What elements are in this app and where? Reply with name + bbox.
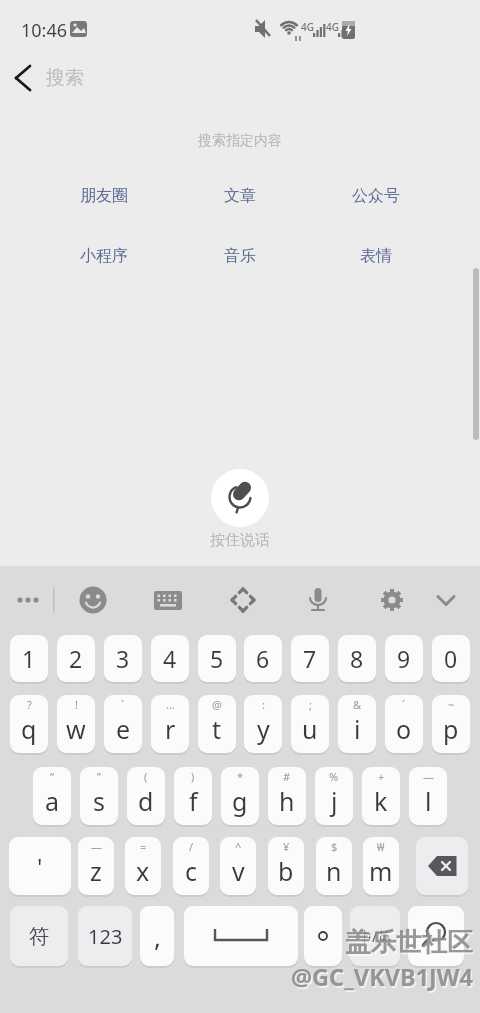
staticText: 朋友圈	[80, 186, 128, 206]
staticText: 0	[444, 643, 458, 674]
staticText: /	[189, 839, 194, 854]
staticText: e	[116, 712, 131, 746]
button[interactable]: 0	[432, 635, 470, 682]
button[interactable]	[4, 62, 44, 94]
button[interactable]	[146, 578, 190, 622]
staticText: 中/英	[358, 927, 392, 946]
staticText: 7	[303, 643, 317, 674]
button[interactable]: 4	[151, 635, 189, 682]
button[interactable]: (	[127, 767, 165, 825]
button[interactable]	[221, 578, 265, 622]
staticText: 搜索指定内容	[198, 132, 282, 150]
staticText: ”	[97, 769, 101, 784]
button[interactable]: '	[9, 837, 71, 895]
button[interactable]: ^	[220, 837, 256, 895]
button[interactable]: ₩	[363, 837, 399, 895]
staticText: 1	[22, 643, 36, 674]
button[interactable]: @	[198, 695, 236, 753]
staticText: 音乐	[224, 246, 256, 266]
staticText: 2	[69, 643, 83, 674]
button[interactable]: %	[315, 767, 353, 825]
staticText: 表情	[360, 246, 392, 266]
staticText: t	[212, 712, 222, 746]
staticText: #	[283, 769, 291, 784]
button[interactable]: 公众号	[266, 178, 480, 213]
button[interactable]: $	[316, 837, 352, 895]
button[interactable]	[416, 837, 468, 895]
button[interactable]	[370, 578, 414, 622]
staticText: 4	[163, 643, 177, 674]
button[interactable]: !	[57, 695, 95, 753]
button[interactable]: `	[104, 695, 142, 753]
button[interactable]: ?	[10, 695, 48, 753]
staticText: ¥	[283, 839, 290, 854]
staticText: )	[191, 769, 195, 784]
staticText: 5	[210, 643, 224, 674]
staticText: 9	[397, 643, 411, 674]
button[interactable]	[304, 906, 342, 966]
staticText: z	[90, 854, 102, 888]
button[interactable]: 表情	[266, 238, 480, 273]
button[interactable]: —	[78, 837, 114, 895]
button[interactable]: ¥	[268, 837, 304, 895]
button[interactable]: ´	[385, 695, 423, 753]
button[interactable]: )	[174, 767, 212, 825]
staticText: 文章	[224, 186, 256, 206]
staticText: y	[257, 712, 270, 746]
button[interactable]: 中/英	[350, 906, 400, 966]
button[interactable]: ,	[140, 906, 174, 966]
button[interactable]: 7	[291, 635, 329, 682]
button[interactable]: 123	[78, 906, 132, 966]
staticText: ₩	[377, 839, 385, 854]
button[interactable]: =	[125, 837, 161, 895]
staticText: 123	[88, 923, 123, 950]
staticText: ?	[27, 697, 32, 712]
button[interactable]: 3	[104, 635, 142, 682]
staticText: 符	[29, 924, 49, 949]
button[interactable]: 符	[10, 906, 68, 966]
staticText: l	[425, 784, 432, 818]
button[interactable]	[71, 578, 115, 622]
button[interactable]: “	[33, 767, 71, 825]
button[interactable]: +	[362, 767, 400, 825]
button[interactable]	[184, 906, 298, 966]
button[interactable]	[6, 578, 50, 622]
button[interactable]: :	[244, 695, 282, 753]
staticText: k	[374, 784, 388, 818]
button[interactable]: 5	[198, 635, 236, 682]
button[interactable]: 2	[57, 635, 95, 682]
button[interactable]: 1	[10, 635, 48, 682]
button[interactable]: 音乐	[130, 238, 350, 273]
button[interactable]: 文章	[130, 178, 350, 213]
button[interactable]: ;	[291, 695, 329, 753]
button[interactable]	[408, 906, 464, 966]
staticText: 10:46	[21, 18, 68, 43]
button[interactable]	[211, 469, 269, 527]
button[interactable]: *	[221, 767, 259, 825]
staticText: !	[75, 697, 78, 712]
staticText: 盖乐世社区	[345, 926, 473, 958]
staticText: w	[66, 712, 86, 746]
staticText: '	[37, 850, 43, 883]
button[interactable]	[424, 578, 468, 622]
button[interactable]: …	[151, 695, 189, 753]
staticText: q	[21, 712, 37, 746]
button[interactable]: #	[268, 767, 306, 825]
staticText: v	[232, 854, 245, 888]
button[interactable]	[296, 578, 340, 622]
button[interactable]: ”	[80, 767, 118, 825]
button[interactable]: 6	[244, 635, 282, 682]
staticText: ´	[402, 697, 406, 712]
button[interactable]: —	[409, 767, 447, 825]
button[interactable]: 朋友圈	[0, 178, 214, 213]
button[interactable]: 9	[385, 635, 423, 682]
button[interactable]: &	[338, 695, 376, 753]
staticText: 搜索	[46, 66, 84, 90]
staticText: ,	[154, 919, 161, 954]
button[interactable]: /	[173, 837, 209, 895]
staticText: —	[423, 769, 434, 784]
staticText: `	[121, 697, 125, 712]
button[interactable]: 8	[338, 635, 376, 682]
button[interactable]: 小程序	[0, 238, 214, 273]
button[interactable]: ~	[432, 695, 470, 753]
